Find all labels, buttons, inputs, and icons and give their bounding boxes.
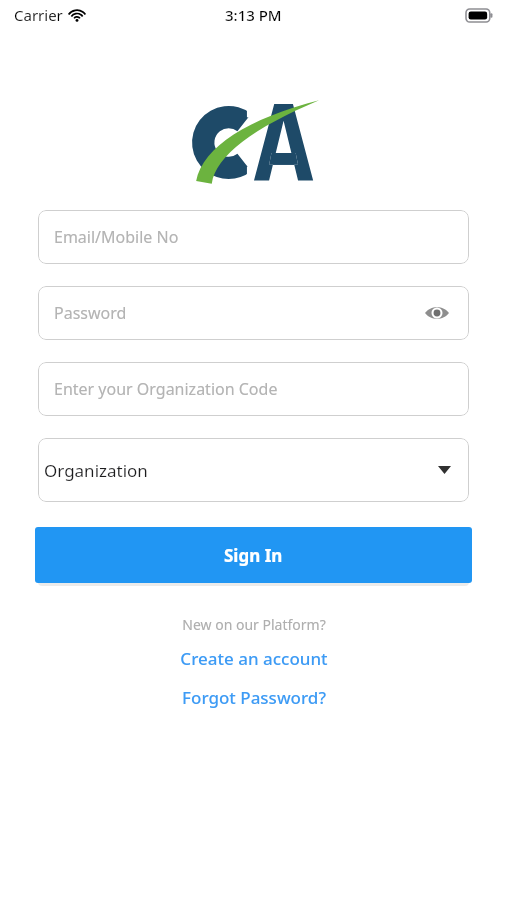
staticText: Create an account (180, 647, 328, 670)
staticText: 3:13 PM (225, 5, 282, 25)
button[interactable]: Create an account (170, 644, 338, 673)
staticText: Email/Mobile No (54, 226, 453, 248)
staticText: Password (54, 302, 421, 324)
staticText: Sign In (224, 544, 283, 567)
staticText: Enter your Organization Code (54, 378, 453, 400)
button[interactable]: Show password (421, 297, 453, 329)
button[interactable]: Forgot Password? (172, 683, 336, 712)
button[interactable]: Password (38, 286, 469, 340)
button[interactable]: Email/Mobile No (38, 210, 469, 264)
button[interactable]: Organization (38, 438, 469, 502)
staticText: Organization (44, 459, 438, 482)
button[interactable]: Enter your Organization Code (38, 362, 469, 416)
button[interactable]: Sign In (35, 527, 472, 583)
staticText: New on our Platform? (182, 615, 326, 634)
staticText: Forgot Password? (182, 686, 326, 709)
staticText: Carrier (14, 5, 63, 25)
